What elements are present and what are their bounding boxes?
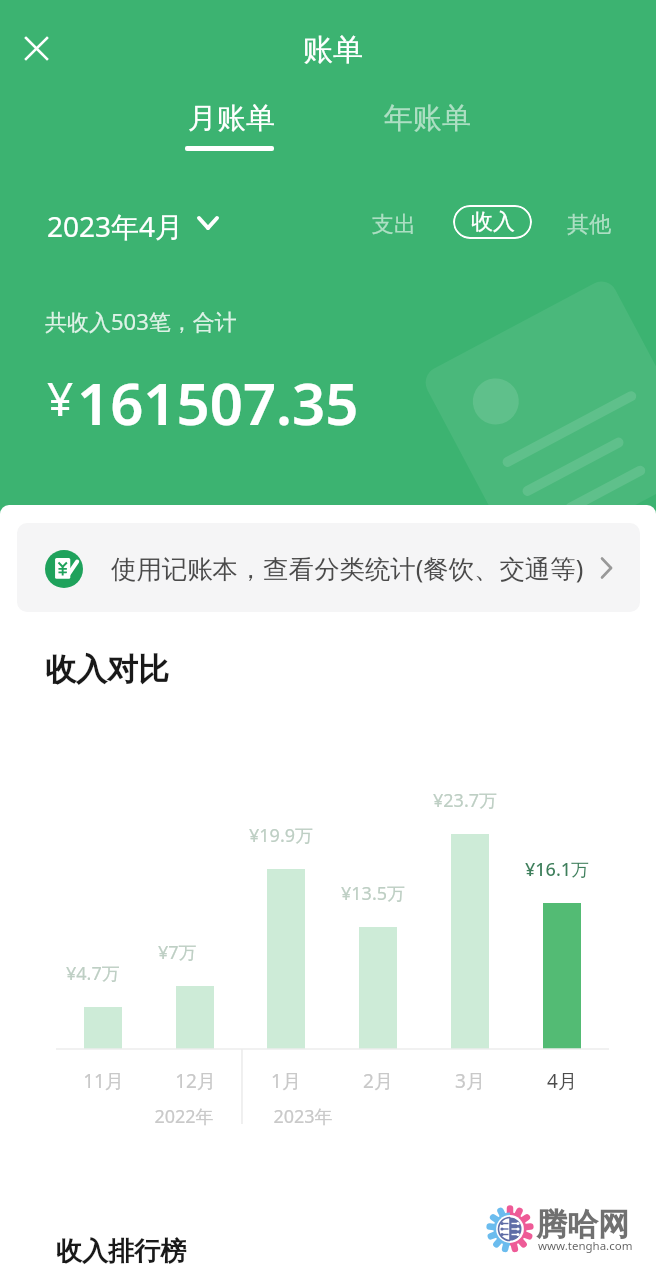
staticText: ¥16.1万 — [525, 857, 590, 882]
staticText: ¥7万 — [158, 940, 197, 965]
staticText: 年账单 — [384, 100, 471, 137]
button[interactable]: 月账单 — [176, 95, 286, 141]
staticText: 腾哈网 — [536, 1205, 629, 1244]
staticText: 其他 — [567, 211, 611, 239]
staticText: 2023年4月 — [47, 207, 184, 245]
staticText: 收入 — [471, 208, 515, 236]
staticText: ¥4.7万 — [66, 961, 120, 986]
staticText: 收入对比 — [45, 650, 169, 689]
staticText: 11月 — [83, 1068, 124, 1094]
staticText: 12月 — [175, 1068, 216, 1094]
button[interactable]: Close — [8, 20, 64, 76]
staticText: ¥ — [47, 367, 74, 430]
staticText: 161507.35 — [77, 363, 359, 442]
staticText: 共收入503笔，合计 — [45, 306, 237, 336]
button[interactable]: 年账单 — [372, 95, 482, 141]
staticText: 收入排行榜 — [56, 1235, 186, 1268]
staticText: 2022年 — [154, 1104, 214, 1129]
staticText: ¥13.5万 — [341, 881, 406, 906]
staticText: www.tengha.com — [538, 1238, 633, 1254]
staticText: 4月 — [547, 1068, 577, 1094]
button[interactable]: 其他 — [560, 207, 618, 243]
staticText: 使用记账本，查看分类统计(餐饮、交通等) — [111, 551, 584, 586]
button[interactable]: 2023年4月 — [40, 200, 225, 248]
staticText: 账单 — [303, 31, 363, 69]
staticText: 1月 — [271, 1068, 301, 1094]
button[interactable]: 使用记账本，查看分类统计(餐饮、交通等) — [17, 523, 640, 612]
staticText: ¥19.9万 — [249, 823, 314, 848]
button[interactable]: 收入 — [453, 205, 532, 239]
staticText: ¥23.7万 — [433, 788, 498, 813]
staticText: 2023年 — [273, 1104, 333, 1129]
button[interactable]: 支出 — [365, 207, 423, 243]
staticText: 月账单 — [188, 100, 275, 137]
staticText: 3月 — [455, 1068, 485, 1094]
staticText: 支出 — [372, 211, 416, 239]
staticText: 2月 — [363, 1068, 393, 1094]
